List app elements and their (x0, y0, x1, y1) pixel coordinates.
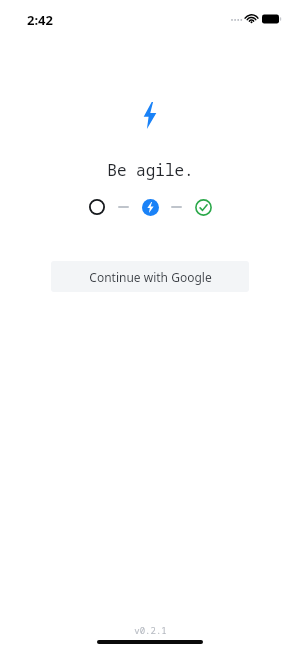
button[interactable]: Step 3 complete (192, 196, 214, 218)
button[interactable]: Step 1 pending (86, 196, 108, 218)
button[interactable]: Step 2 in progress (139, 196, 161, 218)
staticText: Continue with Google (89, 269, 212, 285)
staticText: v0.2.1 (134, 624, 167, 636)
button[interactable]: Continue with Google (51, 261, 249, 292)
staticText: 2:42 (27, 11, 53, 29)
staticText: Be agile. (107, 159, 194, 181)
